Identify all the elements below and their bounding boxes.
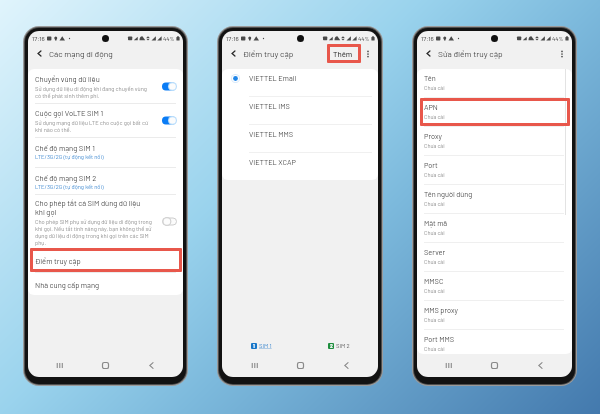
button[interactable]: More options — [362, 48, 374, 60]
button[interactable]: Tên — [424, 74, 566, 97]
button[interactable]: Server — [424, 248, 566, 271]
staticText: Chế độ mạng SIM 2 — [35, 173, 97, 182]
staticText: Chưa cài — [424, 229, 445, 236]
staticText: MMS proxy — [424, 306, 458, 315]
button[interactable]: Recents — [426, 354, 471, 377]
staticText: LTE/3G/2G (tự động kết nối) — [35, 153, 104, 160]
button[interactable]: VIETTEL Email — [222, 74, 378, 96]
staticText: Chưa cài — [424, 345, 445, 352]
button[interactable]: Chuyển vùng dữ liệu — [35, 69, 177, 103]
staticText: 44% — [358, 35, 370, 42]
staticText: Sửa điểm truy cập — [438, 49, 503, 59]
button[interactable]: More options — [556, 48, 568, 60]
staticText: Mật mã — [424, 219, 448, 228]
button[interactable]: Back — [517, 354, 563, 377]
staticText: Điểm truy cập — [35, 256, 81, 265]
button[interactable]: Back — [227, 47, 240, 60]
button[interactable]: VIETTEL MMS — [222, 130, 378, 152]
staticText: Chưa cài — [424, 142, 445, 149]
staticText: LTE/3G/2G (tự động kết nối) — [35, 183, 104, 190]
staticText: Nhà cung cấp mạng — [35, 280, 100, 289]
button[interactable]: Cho phép tắt cá SIM dùng dữ liệu khi gọi — [35, 195, 177, 248]
staticText: Các mạng di động — [49, 49, 113, 59]
staticText: Điểm truy cập — [243, 49, 294, 59]
button[interactable]: Proxy — [424, 132, 566, 155]
staticText: SIM 1 — [259, 342, 272, 349]
staticText: APN — [424, 103, 438, 112]
button[interactable]: Nhà cung cấp mạng — [28, 273, 183, 295]
button[interactable]: Toggle — [162, 82, 177, 91]
button[interactable]: MMS proxy — [424, 306, 566, 329]
staticText: Chế độ mạng SIM 1 — [35, 143, 95, 152]
staticText: Chưa cài — [424, 113, 445, 120]
staticText: Chưa cài — [424, 84, 445, 91]
staticText: VIETTEL XCAP — [249, 158, 296, 167]
staticText: khi nào có thể. — [35, 126, 72, 133]
staticText: 17:16 — [32, 35, 45, 42]
button[interactable]: APN — [424, 103, 566, 126]
button[interactable]: 2 — [328, 342, 350, 349]
button[interactable]: Recents — [231, 354, 277, 377]
staticText: Chưa cài — [424, 287, 445, 294]
staticText: VIETTEL MMS — [249, 130, 294, 139]
staticText: 17:16 — [226, 35, 239, 42]
staticText: phụ. — [35, 239, 47, 246]
staticText: 1 — [253, 343, 255, 349]
staticText: Chưa cài — [424, 171, 445, 178]
button[interactable]: Chế độ mạng SIM 1 — [35, 143, 177, 167]
staticText: Thêm — [333, 49, 353, 58]
button[interactable]: VIETTEL IMS — [222, 102, 378, 124]
staticText: Sử dụng dữ liệu di động khi đang chuyển … — [35, 85, 147, 92]
button[interactable]: VIETTEL XCAP — [222, 158, 378, 180]
button[interactable]: Back — [128, 354, 174, 377]
staticText: Cho phép SIM phụ sử dụng dữ liệu di động… — [35, 218, 152, 225]
staticText: SIM 2 — [336, 342, 350, 349]
button[interactable]: Home — [82, 354, 128, 377]
button[interactable]: Cuộc gọi VoLTE SIM 1 — [35, 104, 177, 137]
staticText: Cho phép tắt cá SIM dùng dữ liệu khi gọi — [35, 198, 141, 216]
staticText: Server — [424, 248, 446, 257]
button[interactable]: Toggle — [162, 116, 177, 125]
staticText: VIETTEL Email — [249, 74, 297, 83]
button[interactable]: Port MMS — [424, 335, 566, 354]
button[interactable]: Tên người dùng — [424, 190, 566, 213]
button[interactable]: Recents — [37, 354, 82, 377]
staticText: Chưa cài — [424, 316, 445, 323]
staticText: Cuộc gọi VoLTE SIM 1 — [35, 108, 104, 117]
staticText: Chưa cài — [424, 200, 445, 207]
staticText: Chuyển vùng dữ liệu — [35, 74, 100, 83]
staticText: Tên người dùng — [424, 190, 473, 199]
button[interactable]: Chế độ mạng SIM 2 — [35, 173, 177, 194]
button[interactable]: Back — [323, 354, 369, 377]
button[interactable]: Điểm truy cập — [28, 249, 183, 272]
staticText: MMSC — [424, 277, 444, 286]
staticText: VIETTEL IMS — [249, 102, 290, 111]
button[interactable]: Thêm — [325, 46, 361, 61]
staticText: Sử dụng mạng dữ liệu LTE cho cuộc gọi bấ… — [35, 119, 149, 126]
button[interactable]: Home — [277, 354, 323, 377]
button[interactable]: Back — [422, 47, 435, 60]
button[interactable]: Back — [33, 47, 46, 60]
staticText: Chưa cài — [424, 258, 445, 265]
staticText: Tên — [424, 74, 436, 83]
staticText: Port MMS — [424, 335, 455, 344]
button[interactable]: Port — [424, 161, 566, 184]
staticText: dụng dữ liệu di động trong khi gọi trên … — [35, 232, 149, 239]
button[interactable]: MMSC — [424, 277, 566, 300]
button[interactable]: Toggle — [162, 217, 177, 226]
staticText: 17:16 — [421, 35, 434, 42]
staticText: Port — [424, 161, 438, 170]
staticText: khi gọi. Nếu tắt tính năng này, bạn khôn… — [35, 225, 152, 232]
staticText: 44% — [552, 35, 564, 42]
button[interactable]: Mật mã — [424, 219, 566, 242]
staticText: có thể phát sinh thêm phí. — [35, 92, 100, 99]
button[interactable]: 1 — [251, 342, 272, 349]
staticText: 44% — [163, 35, 175, 42]
staticText: Proxy — [424, 132, 442, 141]
button[interactable]: Home — [471, 354, 517, 377]
staticText: 2 — [330, 343, 333, 349]
